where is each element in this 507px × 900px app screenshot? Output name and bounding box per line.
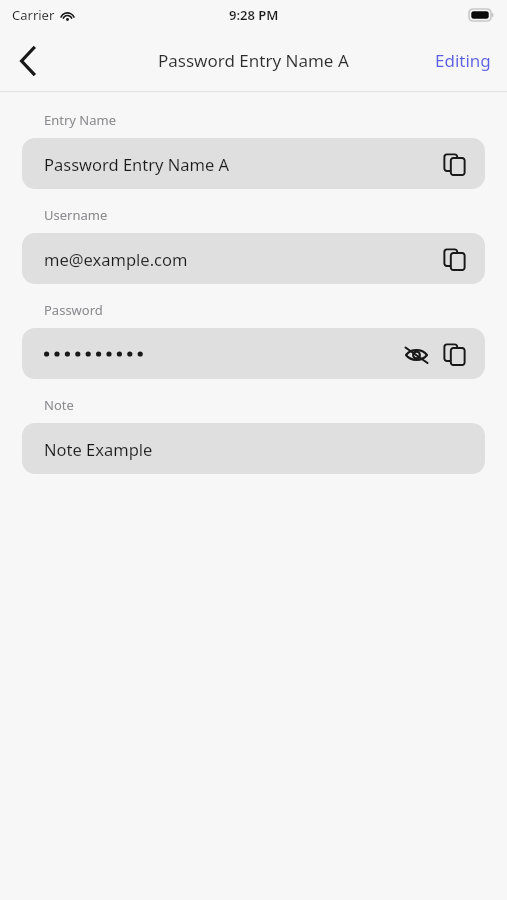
button[interactable]: Note Example xyxy=(22,423,485,474)
staticText: Editing xyxy=(435,49,491,72)
button[interactable]: Show password xyxy=(399,337,433,371)
staticText: Entry Name xyxy=(44,111,116,129)
button[interactable]: Back xyxy=(4,37,52,85)
staticText: Password Entry Name A xyxy=(158,49,349,72)
button[interactable]: Password Entry Name A xyxy=(22,138,485,189)
staticText: Username xyxy=(44,206,108,224)
button[interactable]: Editing xyxy=(435,49,491,72)
staticText: me@example.com xyxy=(44,248,437,270)
staticText: Password Entry Name A xyxy=(44,153,437,175)
staticText: Password xyxy=(44,301,103,319)
button[interactable]: Copy xyxy=(437,337,471,371)
staticText: 9:28 PM xyxy=(229,6,279,24)
staticText: Note xyxy=(44,396,74,414)
button[interactable]: Show password xyxy=(22,328,485,379)
button[interactable]: Copy xyxy=(437,242,471,276)
button[interactable]: me@example.com xyxy=(22,233,485,284)
staticText: Carrier xyxy=(12,6,55,24)
staticText: Note Example xyxy=(44,438,471,460)
button[interactable]: Copy xyxy=(437,147,471,181)
